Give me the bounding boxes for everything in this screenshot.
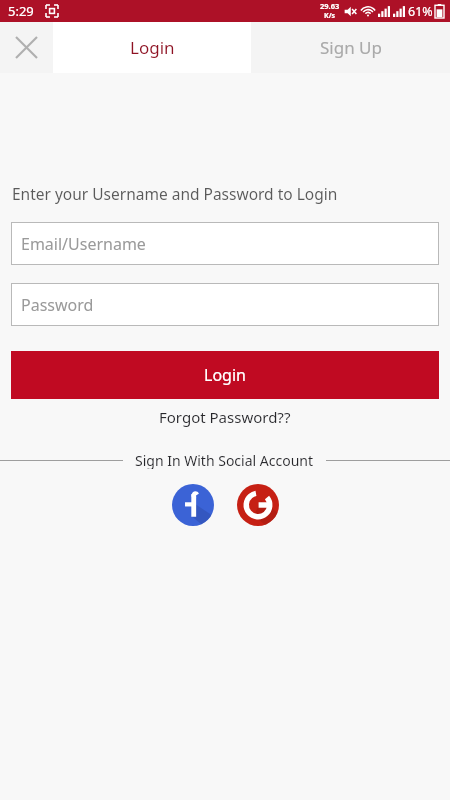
button[interactable]: Email/Username xyxy=(11,222,439,265)
staticText: 5:29 xyxy=(8,2,34,20)
button[interactable]: Forgot Password?? xyxy=(0,407,450,427)
staticText: Enter your Username and Password to Logi… xyxy=(12,183,338,204)
staticText: Sign Up xyxy=(320,36,382,59)
button[interactable]: Sign Up xyxy=(251,22,450,73)
button[interactable]: Close xyxy=(0,22,53,73)
staticText: Login xyxy=(204,364,246,386)
button[interactable]: Password xyxy=(11,283,439,326)
staticText: 61% xyxy=(408,3,433,20)
staticText: Sign In With Social Account xyxy=(135,451,314,469)
staticText: Password xyxy=(21,294,94,316)
staticText: 29.63 xyxy=(320,1,340,11)
staticText: Login xyxy=(130,36,175,59)
staticText: Email/Username xyxy=(21,233,146,255)
staticText: Forgot Password?? xyxy=(159,407,291,427)
button[interactable]: Login xyxy=(53,22,251,73)
button[interactable]: Sign in with Google xyxy=(236,483,280,527)
button[interactable]: Login xyxy=(11,351,439,399)
staticText: K/s xyxy=(324,11,336,21)
button[interactable]: Sign in with Facebook xyxy=(171,483,215,527)
